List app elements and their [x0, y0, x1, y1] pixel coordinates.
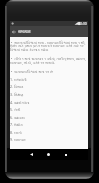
staticText: 10:30 [78, 21, 87, 26]
staticText: 2. વિભાગ [10, 84, 24, 89]
button[interactable]: Recents [57, 149, 74, 160]
staticText: ઉમેર માટે પ્રથમ પ્રાપ્ત થનારને સમાચાર વગ… [10, 43, 84, 48]
button[interactable]: 9. સમાચાર [10, 135, 88, 143]
button[interactable]: Back [23, 149, 40, 160]
button[interactable]: Back [11, 26, 17, 37]
staticText: • નીચે ૧ થતાં સમાચાર ૧ વર્ષમાં, તારીખ,સ્… [11, 56, 86, 61]
staticText: 7. ઉદ્યોગ [10, 122, 23, 127]
staticText: 8. રમતો [10, 130, 22, 135]
staticText: • ભારતમાં/વિશ્વમાં થતા - સમાચાર/વિશ્વમાં… [11, 40, 86, 45]
button[interactable]: 4. આરોગ્યના [10, 98, 88, 106]
staticText: 3. શિક્ષણ [10, 92, 24, 97]
staticText: 6. આવાસ [10, 115, 25, 120]
staticText: સમાચાર, લોકો, વગેરે ૧૨ થતાય. [10, 60, 56, 65]
button[interactable]: 8. રમતો [10, 128, 88, 136]
staticText: • સમાચાર/વિશ્વમાં થતા ૧૨ છે [11, 69, 53, 74]
button[interactable]: 3. શિક્ષણ [10, 90, 88, 98]
staticText: સમાચાર [18, 28, 31, 35]
button[interactable]: Home [40, 149, 57, 160]
button[interactable]: 5. ખેતી [10, 105, 88, 113]
staticText: 9. સમાચાર [10, 137, 26, 142]
staticText: 5. ખેતી [10, 107, 21, 112]
button[interactable]: 2. વિભાગ [10, 82, 88, 90]
button[interactable]: 7. ઉદ્યોગ [10, 120, 88, 128]
staticText: 1. રાજ્યની [10, 77, 27, 82]
staticText: વિશ્વમાં જોવા કેટલાક જોવા [10, 47, 49, 52]
button[interactable]: 1. રાજ્યની [10, 75, 88, 83]
staticText: 4. આરોગ્યના [10, 100, 30, 105]
button[interactable]: 6. આવાસ [10, 113, 88, 121]
